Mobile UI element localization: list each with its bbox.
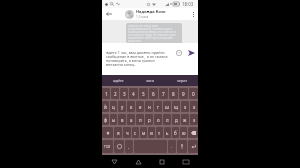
staticText: б xyxy=(174,130,177,136)
button[interactable]: Back xyxy=(102,8,116,20)
staticText: щ xyxy=(174,104,178,110)
staticText: у xyxy=(121,104,124,110)
staticText: 2 xyxy=(114,91,117,97)
staticText: 0 xyxy=(192,91,195,97)
staticText: Надежда Козл xyxy=(136,9,166,14)
staticText: часа xyxy=(146,78,154,83)
staticText: д xyxy=(175,117,178,123)
staticText: я xyxy=(117,130,120,136)
staticText: 7 xyxy=(162,91,165,97)
button[interactable]: часа xyxy=(134,75,166,86)
button[interactable]: Keyboard xyxy=(174,155,198,168)
staticText: 5 xyxy=(142,91,145,97)
button[interactable]: е xyxy=(136,101,144,112)
button[interactable]: п xyxy=(136,114,144,125)
button[interactable]: 4 xyxy=(129,88,138,99)
staticText: г xyxy=(157,104,159,110)
button[interactable]: а xyxy=(127,114,135,125)
button[interactable]: Backspace xyxy=(188,127,198,138)
button[interactable]: Back xyxy=(102,155,126,168)
button[interactable]: через xyxy=(166,75,198,86)
button[interactable]: 9 xyxy=(179,88,188,99)
staticText: л xyxy=(166,117,169,123)
button[interactable]: к xyxy=(127,101,135,112)
staticText: 9 xyxy=(182,91,185,97)
button[interactable]: Emoji xyxy=(114,140,124,153)
staticText: о xyxy=(157,117,160,123)
staticText: в xyxy=(121,117,124,123)
staticText: 4 xyxy=(132,91,135,97)
button[interactable]: ж xyxy=(181,114,189,125)
staticText: и xyxy=(150,130,153,136)
button[interactable]: 5 xyxy=(139,88,148,99)
button[interactable]: Emoji xyxy=(172,43,185,63)
button[interactable]: б xyxy=(172,127,179,138)
button[interactable]: Send xyxy=(185,43,197,63)
button[interactable]: х xyxy=(190,101,198,112)
button[interactable]: Enter xyxy=(188,140,198,153)
button[interactable]: 6 xyxy=(149,88,158,99)
button[interactable]: Numbers xyxy=(102,140,113,153)
staticText: 8 xyxy=(172,91,175,97)
button[interactable]: Period xyxy=(168,140,176,153)
staticText: ждёте 1 час, вам должно прийти сообщение… xyxy=(106,50,170,67)
staticText: з xyxy=(184,104,187,110)
button[interactable]: у xyxy=(118,101,126,112)
button[interactable]: Recents xyxy=(150,155,174,168)
button[interactable]: Voice input xyxy=(177,140,187,153)
button[interactable]: э xyxy=(190,114,198,125)
button[interactable]: 1 xyxy=(102,88,110,99)
staticText: 1,5 часа xyxy=(136,15,149,19)
button[interactable]: ждёте xyxy=(102,75,134,86)
button[interactable]: г xyxy=(154,101,162,112)
button[interactable]: я xyxy=(114,127,122,138)
staticText: ч xyxy=(126,130,129,136)
staticText: , xyxy=(128,144,130,149)
staticText: р xyxy=(148,117,151,123)
staticText: х xyxy=(193,104,196,110)
button[interactable]: More options xyxy=(188,8,198,20)
button[interactable]: д xyxy=(172,114,180,125)
button[interactable]: з xyxy=(181,101,189,112)
button[interactable]: ы xyxy=(110,114,117,125)
staticText: ж xyxy=(183,117,187,123)
button[interactable]: Comma xyxy=(125,140,133,153)
button[interactable]: о xyxy=(154,114,162,125)
staticText: ф xyxy=(104,117,108,123)
staticText: 3 xyxy=(123,91,126,97)
button[interactable]: м xyxy=(140,127,147,138)
button[interactable]: с xyxy=(132,127,139,138)
button[interactable]: ь xyxy=(164,127,171,138)
button[interactable]: ц xyxy=(110,101,117,112)
button[interactable]: и xyxy=(148,127,155,138)
button[interactable]: т xyxy=(156,127,163,138)
staticText: 1 xyxy=(105,91,108,97)
button[interactable]: Shift xyxy=(102,127,113,138)
button[interactable]: й xyxy=(102,101,109,112)
button[interactable]: ч xyxy=(123,127,131,138)
button[interactable]: в xyxy=(118,114,126,125)
staticText: . xyxy=(171,144,173,149)
staticText: через xyxy=(177,78,188,83)
staticText: 6 xyxy=(152,91,155,97)
staticText: 18:03 xyxy=(182,1,194,7)
button[interactable]: н xyxy=(145,101,153,112)
staticText: ю xyxy=(182,130,186,136)
staticText: сейчас не могу вам разговаривать, потому… xyxy=(128,24,180,43)
button[interactable]: ш xyxy=(163,101,171,112)
staticText: ь xyxy=(166,130,169,136)
button[interactable]: Home xyxy=(126,155,150,168)
button[interactable]: 8 xyxy=(169,88,178,99)
button[interactable]: 3 xyxy=(120,88,128,99)
button[interactable]: 2 xyxy=(111,88,119,99)
button[interactable]: 0 xyxy=(189,88,198,99)
button[interactable]: ф xyxy=(102,114,109,125)
staticText: т xyxy=(158,130,161,136)
button[interactable]: щ xyxy=(172,101,180,112)
button[interactable]: 7 xyxy=(159,88,168,99)
button[interactable]: р xyxy=(145,114,153,125)
staticText: э xyxy=(193,117,196,123)
button[interactable]: ю xyxy=(180,127,187,138)
button[interactable]: л xyxy=(163,114,171,125)
